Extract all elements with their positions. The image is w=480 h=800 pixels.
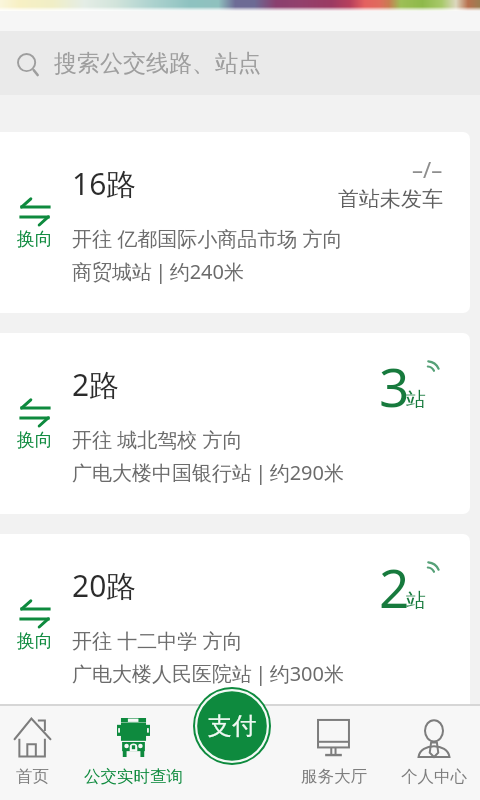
- staticText: 广电大楼人民医院站 | 约300米: [72, 660, 344, 687]
- button[interactable]: 支付: [193, 687, 271, 765]
- button[interactable]: 换向: [0, 333, 470, 514]
- button[interactable]: 换向: [0, 534, 470, 715]
- other: 首页: [14, 718, 51, 757]
- other: 公交实时查询: [117, 718, 150, 757]
- staticText: 20路: [72, 565, 137, 606]
- staticText: 开往 城北驾校 方向: [72, 426, 243, 453]
- staticText: 商贸城站 | 约240米: [72, 258, 244, 285]
- button[interactable]: 服务大厅: [278, 704, 390, 800]
- staticText: 公交实时查询: [84, 766, 183, 787]
- button[interactable]: 个人中心: [378, 704, 480, 800]
- staticText: 开往 亿都国际小商品市场 方向: [72, 225, 343, 252]
- button[interactable]: 首页: [0, 704, 88, 800]
- staticText: 首站未发车: [338, 186, 443, 212]
- staticText: 站: [406, 387, 426, 412]
- staticText: 换向: [17, 630, 53, 653]
- button[interactable]: 换向: [0, 132, 470, 313]
- staticText: 3: [379, 350, 410, 422]
- staticText: 个人中心: [401, 766, 467, 787]
- staticText: 开往 十二中学 方向: [72, 627, 243, 654]
- staticText: –/–: [412, 154, 443, 184]
- staticText: 站: [406, 588, 426, 613]
- other: 服务大厅: [317, 718, 351, 757]
- staticText: 服务大厅: [301, 766, 367, 787]
- staticText: 换向: [17, 429, 53, 452]
- other: 个人中心: [417, 718, 451, 757]
- staticText: 换向: [17, 228, 53, 251]
- staticText: 16路: [72, 163, 137, 204]
- staticText: 2: [379, 551, 410, 623]
- staticText: 搜索公交线路、站点: [54, 49, 261, 78]
- button[interactable]: 公交实时查询: [77, 704, 189, 800]
- staticText: 广电大楼中国银行站 | 约290米: [72, 459, 344, 486]
- staticText: 2路: [72, 364, 120, 405]
- staticText: 支付: [208, 711, 256, 741]
- button[interactable]: 搜索公交线路、站点: [0, 31, 480, 95]
- staticText: 首页: [16, 766, 49, 787]
